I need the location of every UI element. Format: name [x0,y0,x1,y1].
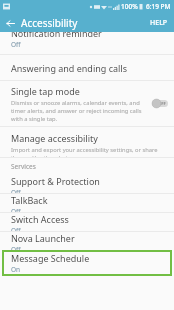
staticText: Off [11,226,21,231]
staticText: Dismiss or snooze alarms, calendar event… [11,99,150,123]
staticText: Manage accessibility [11,132,98,144]
staticText: Support & Protection [11,175,100,187]
staticText: OFF [158,101,166,107]
button[interactable]: Notification reminder [0,32,174,54]
button[interactable]: Message Schedule [2,250,172,276]
staticText: Off [11,207,21,212]
staticText: Off [11,245,21,250]
button[interactable]: TalkBack [0,194,174,212]
button[interactable]: Nova Launcher [0,232,174,250]
staticText: TalkBack [11,194,48,206]
staticText: Off [11,188,21,193]
staticText: Message Schedule [11,252,90,264]
button[interactable]: Single tap mode [0,81,174,126]
button[interactable]: Switch Access [0,213,174,231]
button[interactable]: HELP [144,14,174,32]
staticText: Single tap mode [11,85,80,97]
staticText: Import and export your accessibility set… [11,146,169,157]
staticText: Switch Access [11,213,69,225]
button[interactable]: Manage accessibility [0,127,174,157]
staticText: HELP [150,18,168,28]
staticText: 6:19 PM [146,2,171,11]
button[interactable]: Navigate up [2,15,18,31]
staticText: Answering and ending calls [11,62,127,74]
staticText: Nova Launcher [11,232,75,244]
staticText: Notification reminder [11,32,102,39]
button[interactable]: Support & Protection [0,175,174,193]
staticText: Off [11,40,21,49]
staticText: On [11,265,21,274]
button[interactable]: Single tap mode, off [152,99,168,108]
staticText: Services [11,162,36,171]
staticText: 100% [121,2,138,11]
button[interactable]: Answering and ending calls [0,55,174,80]
staticText: Accessibility [21,16,78,30]
